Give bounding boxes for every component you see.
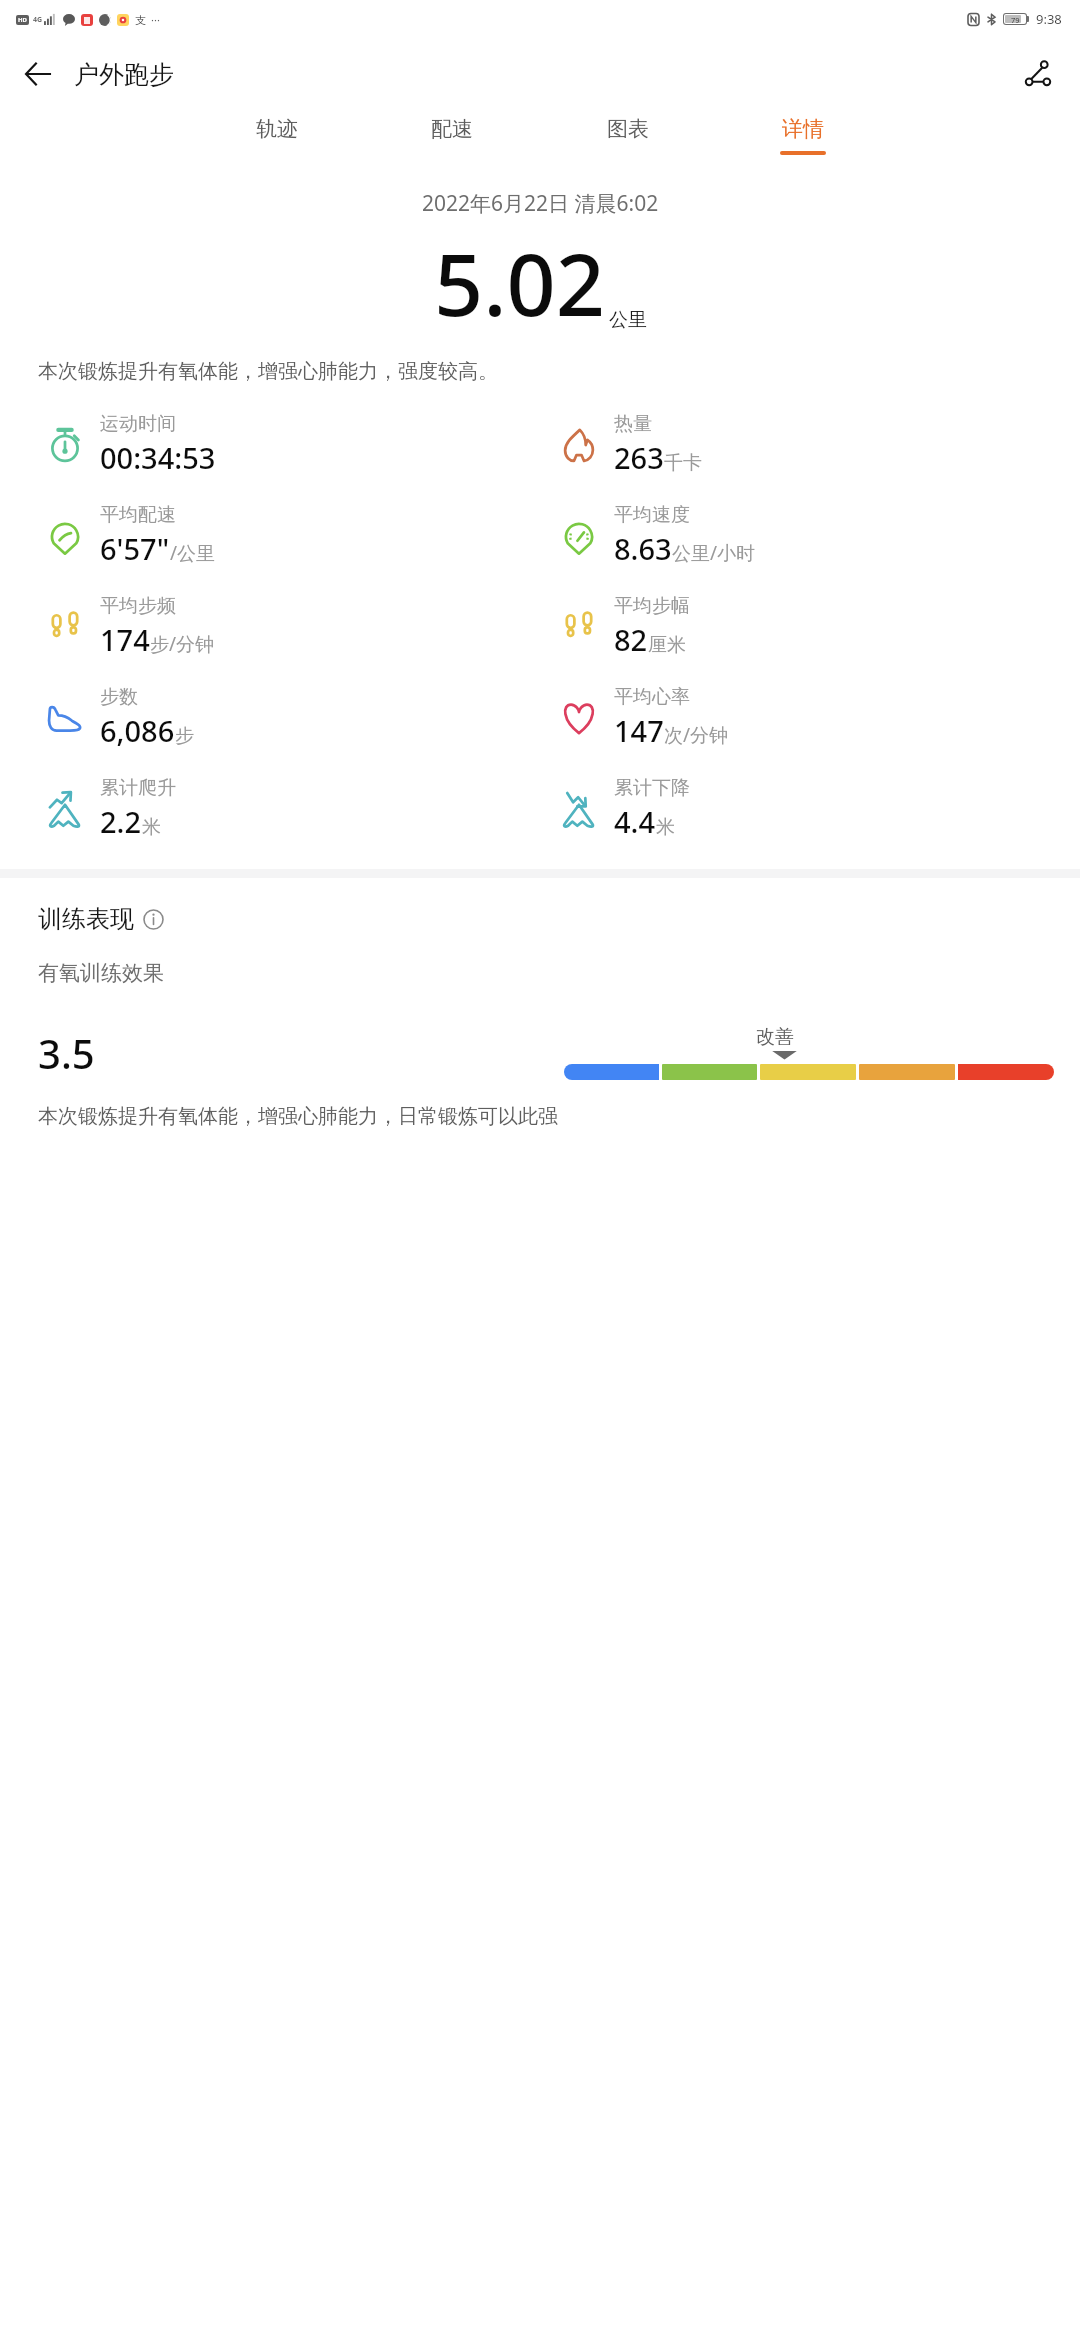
staticText: 4G bbox=[33, 15, 43, 25]
button[interactable]: 步数 bbox=[44, 683, 202, 752]
staticText: 训练表现 bbox=[38, 904, 134, 934]
staticText: 改善 bbox=[756, 1025, 794, 1049]
staticText: 3.5 bbox=[38, 1026, 95, 1080]
button[interactable]: 热量 bbox=[558, 410, 710, 479]
staticText: 6,086 bbox=[100, 711, 175, 750]
button[interactable]: 图表 bbox=[601, 110, 655, 161]
staticText: 步数 bbox=[100, 685, 138, 709]
staticText: 本次锻炼提升有氧体能，增强心肺能力，强度较高。 bbox=[38, 359, 1046, 384]
staticText: 累计爬升 bbox=[100, 776, 176, 800]
button[interactable]: 累计爬升 bbox=[44, 774, 184, 843]
staticText: ··· bbox=[151, 12, 160, 27]
button[interactable]: 训练表现 bbox=[38, 904, 164, 934]
staticText: 轨迹 bbox=[256, 116, 298, 142]
button[interactable]: 配速 bbox=[425, 110, 479, 161]
button[interactable]: 平均配速 bbox=[44, 501, 224, 570]
staticText: 图表 bbox=[607, 116, 649, 142]
staticText: 2022年6月22日 清晨6:02 bbox=[422, 189, 659, 218]
staticText: 热量 bbox=[614, 412, 652, 436]
staticText: 平均配速 bbox=[100, 503, 176, 527]
staticText: 平均心率 bbox=[614, 685, 690, 709]
staticText: 4.4 bbox=[614, 802, 656, 841]
staticText: HD bbox=[18, 16, 27, 24]
button[interactable]: Share bbox=[1010, 46, 1066, 102]
button[interactable]: 累计下降 bbox=[558, 774, 698, 843]
staticText: 5.02 bbox=[434, 224, 605, 341]
staticText: 79 bbox=[1011, 15, 1020, 23]
staticText: 配速 bbox=[431, 116, 473, 142]
staticText: 8.63 bbox=[614, 529, 672, 568]
staticText: 平均步频 bbox=[100, 594, 176, 618]
button[interactable]: 平均心率 bbox=[558, 683, 737, 752]
staticText: 263 bbox=[614, 438, 664, 477]
staticText: 步 bbox=[175, 724, 194, 748]
staticText: 公里/小时 bbox=[672, 540, 756, 566]
staticText: 米 bbox=[656, 815, 675, 839]
staticText: 户外跑步 bbox=[74, 59, 174, 90]
staticText: 平均速度 bbox=[614, 503, 690, 527]
staticText: 174 bbox=[100, 620, 150, 659]
staticText: 147 bbox=[614, 711, 664, 750]
staticText: 00:34:53 bbox=[100, 438, 216, 477]
staticText: 支 bbox=[135, 13, 146, 27]
staticText: 次/分钟 bbox=[664, 722, 729, 748]
staticText: 运动时间 bbox=[100, 412, 176, 436]
staticText: 有氧训练效果 bbox=[38, 960, 164, 986]
staticText: 公里 bbox=[609, 308, 647, 332]
staticText: 米 bbox=[142, 815, 161, 839]
staticText: 82 bbox=[614, 620, 648, 659]
button[interactable]: 运动时间 bbox=[44, 410, 224, 479]
button[interactable]: 平均步幅 bbox=[558, 592, 698, 661]
staticText: 千卡 bbox=[664, 451, 702, 475]
staticText: /公里 bbox=[170, 540, 216, 566]
button[interactable]: 轨迹 bbox=[250, 110, 304, 161]
staticText: 9:38 bbox=[1036, 10, 1062, 28]
staticText: 步/分钟 bbox=[150, 631, 215, 657]
staticText: 详情 bbox=[782, 116, 824, 142]
button[interactable]: 平均步频 bbox=[44, 592, 223, 661]
staticText: 累计下降 bbox=[614, 776, 690, 800]
staticText: 厘米 bbox=[648, 633, 686, 657]
button[interactable]: 平均速度 bbox=[558, 501, 764, 570]
button[interactable]: Back bbox=[10, 46, 66, 102]
button[interactable]: 详情 bbox=[776, 110, 830, 161]
staticText: 2.2 bbox=[100, 802, 142, 841]
other: Info bbox=[143, 909, 164, 930]
staticText: 6'57" bbox=[100, 529, 170, 568]
staticText: 平均步幅 bbox=[614, 594, 690, 618]
staticText: 本次锻炼提升有氧体能，增强心肺能力，日常锻炼可以此强 bbox=[38, 1104, 558, 1129]
